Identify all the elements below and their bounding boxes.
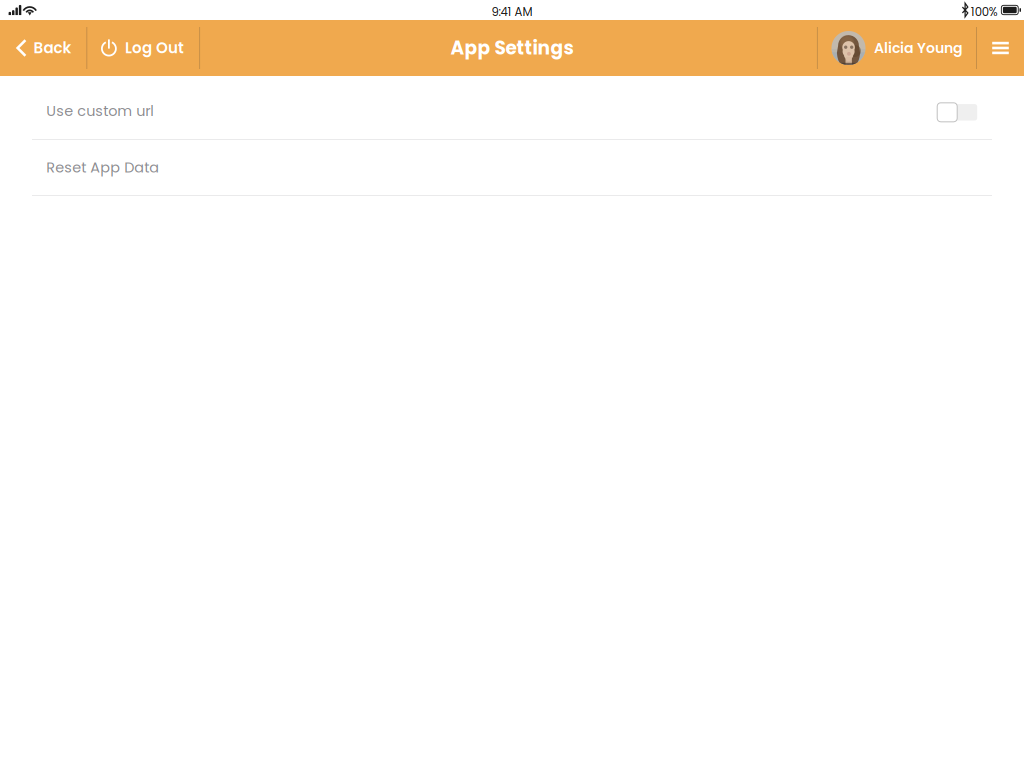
button[interactable]: Use custom url [0, 83, 1024, 140]
staticText: App Settings [450, 35, 573, 61]
button[interactable]: Reset App Data [0, 140, 1024, 196]
staticText: Use custom url [46, 101, 154, 121]
button[interactable]: Log Out [87, 20, 199, 76]
staticText: Log Out [125, 37, 184, 58]
button[interactable]: Back [0, 20, 86, 76]
button[interactable]: Alicia Young [818, 20, 976, 76]
staticText: Reset App Data [46, 157, 159, 178]
staticText: 100% [971, 4, 998, 20]
button[interactable]: Menu [977, 20, 1024, 76]
staticText: 9:41 AM [491, 4, 532, 20]
staticText: Alicia Young [874, 38, 963, 58]
staticText: Back [33, 37, 71, 58]
